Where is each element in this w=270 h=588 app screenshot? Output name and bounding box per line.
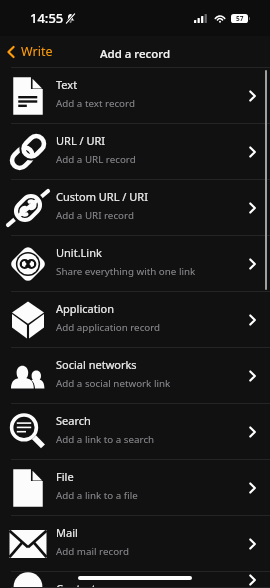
- staticText: 14:55: [30, 9, 64, 27]
- staticText: Mail: [56, 525, 78, 540]
- staticText: Unit.Link: [56, 245, 102, 260]
- button[interactable]: Search: [0, 404, 270, 460]
- staticText: Add mail record: [56, 545, 129, 558]
- staticText: Add a URL record: [56, 153, 136, 166]
- staticText: Add a record: [100, 46, 171, 62]
- button[interactable]: Write: [0, 39, 61, 64]
- staticText: URL / URI: [56, 133, 106, 148]
- button[interactable]: Unit.Link: [0, 236, 270, 292]
- staticText: Custom URL / URI: [56, 189, 148, 204]
- staticText: Add a social network link: [56, 377, 171, 390]
- staticText: Text: [56, 77, 78, 92]
- staticText: Add a URI record: [56, 209, 134, 222]
- staticText: Add a text record: [56, 97, 135, 110]
- staticText: Share everything with one link: [56, 265, 196, 278]
- button[interactable]: File: [0, 460, 270, 516]
- staticText: Contact: [56, 581, 96, 588]
- staticText: Add application record: [56, 321, 161, 334]
- staticText: 57: [236, 14, 244, 23]
- staticText: File: [56, 469, 74, 484]
- staticText: Write: [21, 43, 53, 60]
- staticText: Search: [56, 413, 91, 428]
- button[interactable]: Text: [0, 68, 270, 124]
- staticText: Add a link to a file: [56, 489, 138, 502]
- button[interactable]: Social networks: [0, 348, 270, 404]
- staticText: Add a link to a search: [56, 433, 155, 446]
- button[interactable]: Application: [0, 292, 270, 348]
- staticText: Application: [56, 301, 114, 316]
- button[interactable]: Mail: [0, 516, 270, 572]
- staticText: Social networks: [56, 357, 137, 372]
- button[interactable]: URL / URI: [0, 124, 270, 180]
- button[interactable]: Custom URL / URI: [0, 180, 270, 236]
- button[interactable]: Contact: [0, 572, 270, 588]
